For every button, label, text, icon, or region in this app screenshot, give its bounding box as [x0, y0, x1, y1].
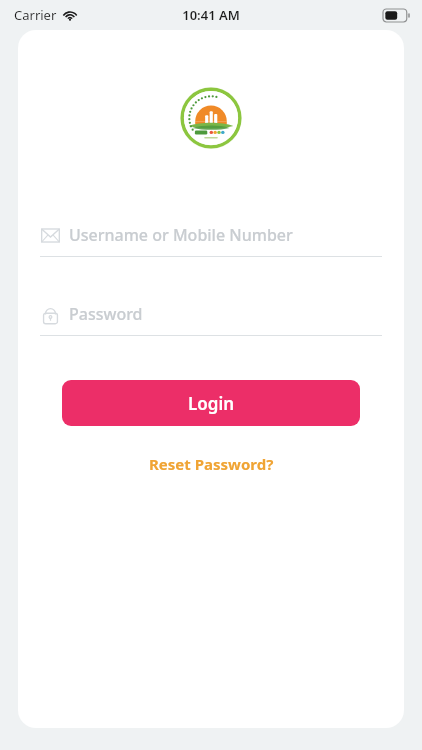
button[interactable]: Login	[62, 380, 360, 426]
button[interactable]: Reset Password?	[135, 448, 288, 480]
staticText: 10:41 AM	[182, 6, 240, 24]
staticText: Password	[69, 303, 143, 325]
staticText: Reset Password?	[149, 454, 274, 474]
staticText: Carrier	[14, 6, 57, 24]
button[interactable]: Password	[40, 303, 382, 336]
button[interactable]: Username or Mobile Number	[40, 224, 382, 257]
staticText: Username or Mobile Number	[69, 224, 293, 246]
staticText: Login	[188, 392, 235, 415]
